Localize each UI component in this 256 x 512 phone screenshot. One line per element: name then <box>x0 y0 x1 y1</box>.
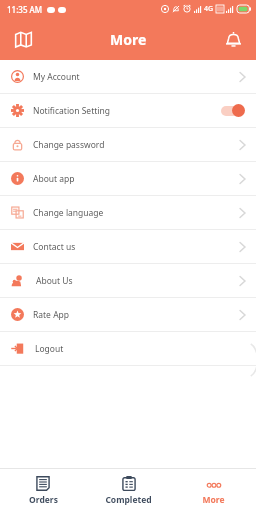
button[interactable]: My Account <box>0 60 256 94</box>
button[interactable]: Logout <box>0 332 256 366</box>
button[interactable]: Change password <box>0 128 256 162</box>
staticText: 11:35 AM <box>7 4 43 15</box>
staticText: More <box>110 30 147 49</box>
button[interactable]: Orders <box>0 469 86 512</box>
button[interactable]: Map <box>6 22 40 56</box>
staticText: Completed <box>105 494 152 506</box>
staticText: My Account <box>33 71 80 83</box>
staticText: Logout <box>35 343 64 355</box>
button[interactable]: Completed <box>86 469 171 512</box>
staticText: 4G <box>204 4 214 14</box>
staticText: Contact us <box>33 241 76 253</box>
button[interactable]: Notifications <box>216 22 250 56</box>
staticText: About app <box>33 173 75 185</box>
staticText: Change password <box>33 139 105 151</box>
button[interactable]: About Us <box>0 264 256 298</box>
staticText: Change language <box>33 207 104 219</box>
button[interactable]: Change language <box>0 196 256 230</box>
button[interactable]: Toggle notifications <box>220 104 246 117</box>
button[interactable]: About app <box>0 162 256 196</box>
button[interactable]: Contact us <box>0 230 256 264</box>
button[interactable]: More <box>171 469 256 512</box>
staticText: Notification Setting <box>33 105 110 117</box>
button[interactable]: Rate App <box>0 298 256 332</box>
button[interactable]: Notification Setting <box>0 94 256 128</box>
staticText: About Us <box>36 275 73 287</box>
staticText: More <box>202 494 225 506</box>
staticText: Orders <box>29 494 58 506</box>
staticText: Rate App <box>33 309 70 321</box>
